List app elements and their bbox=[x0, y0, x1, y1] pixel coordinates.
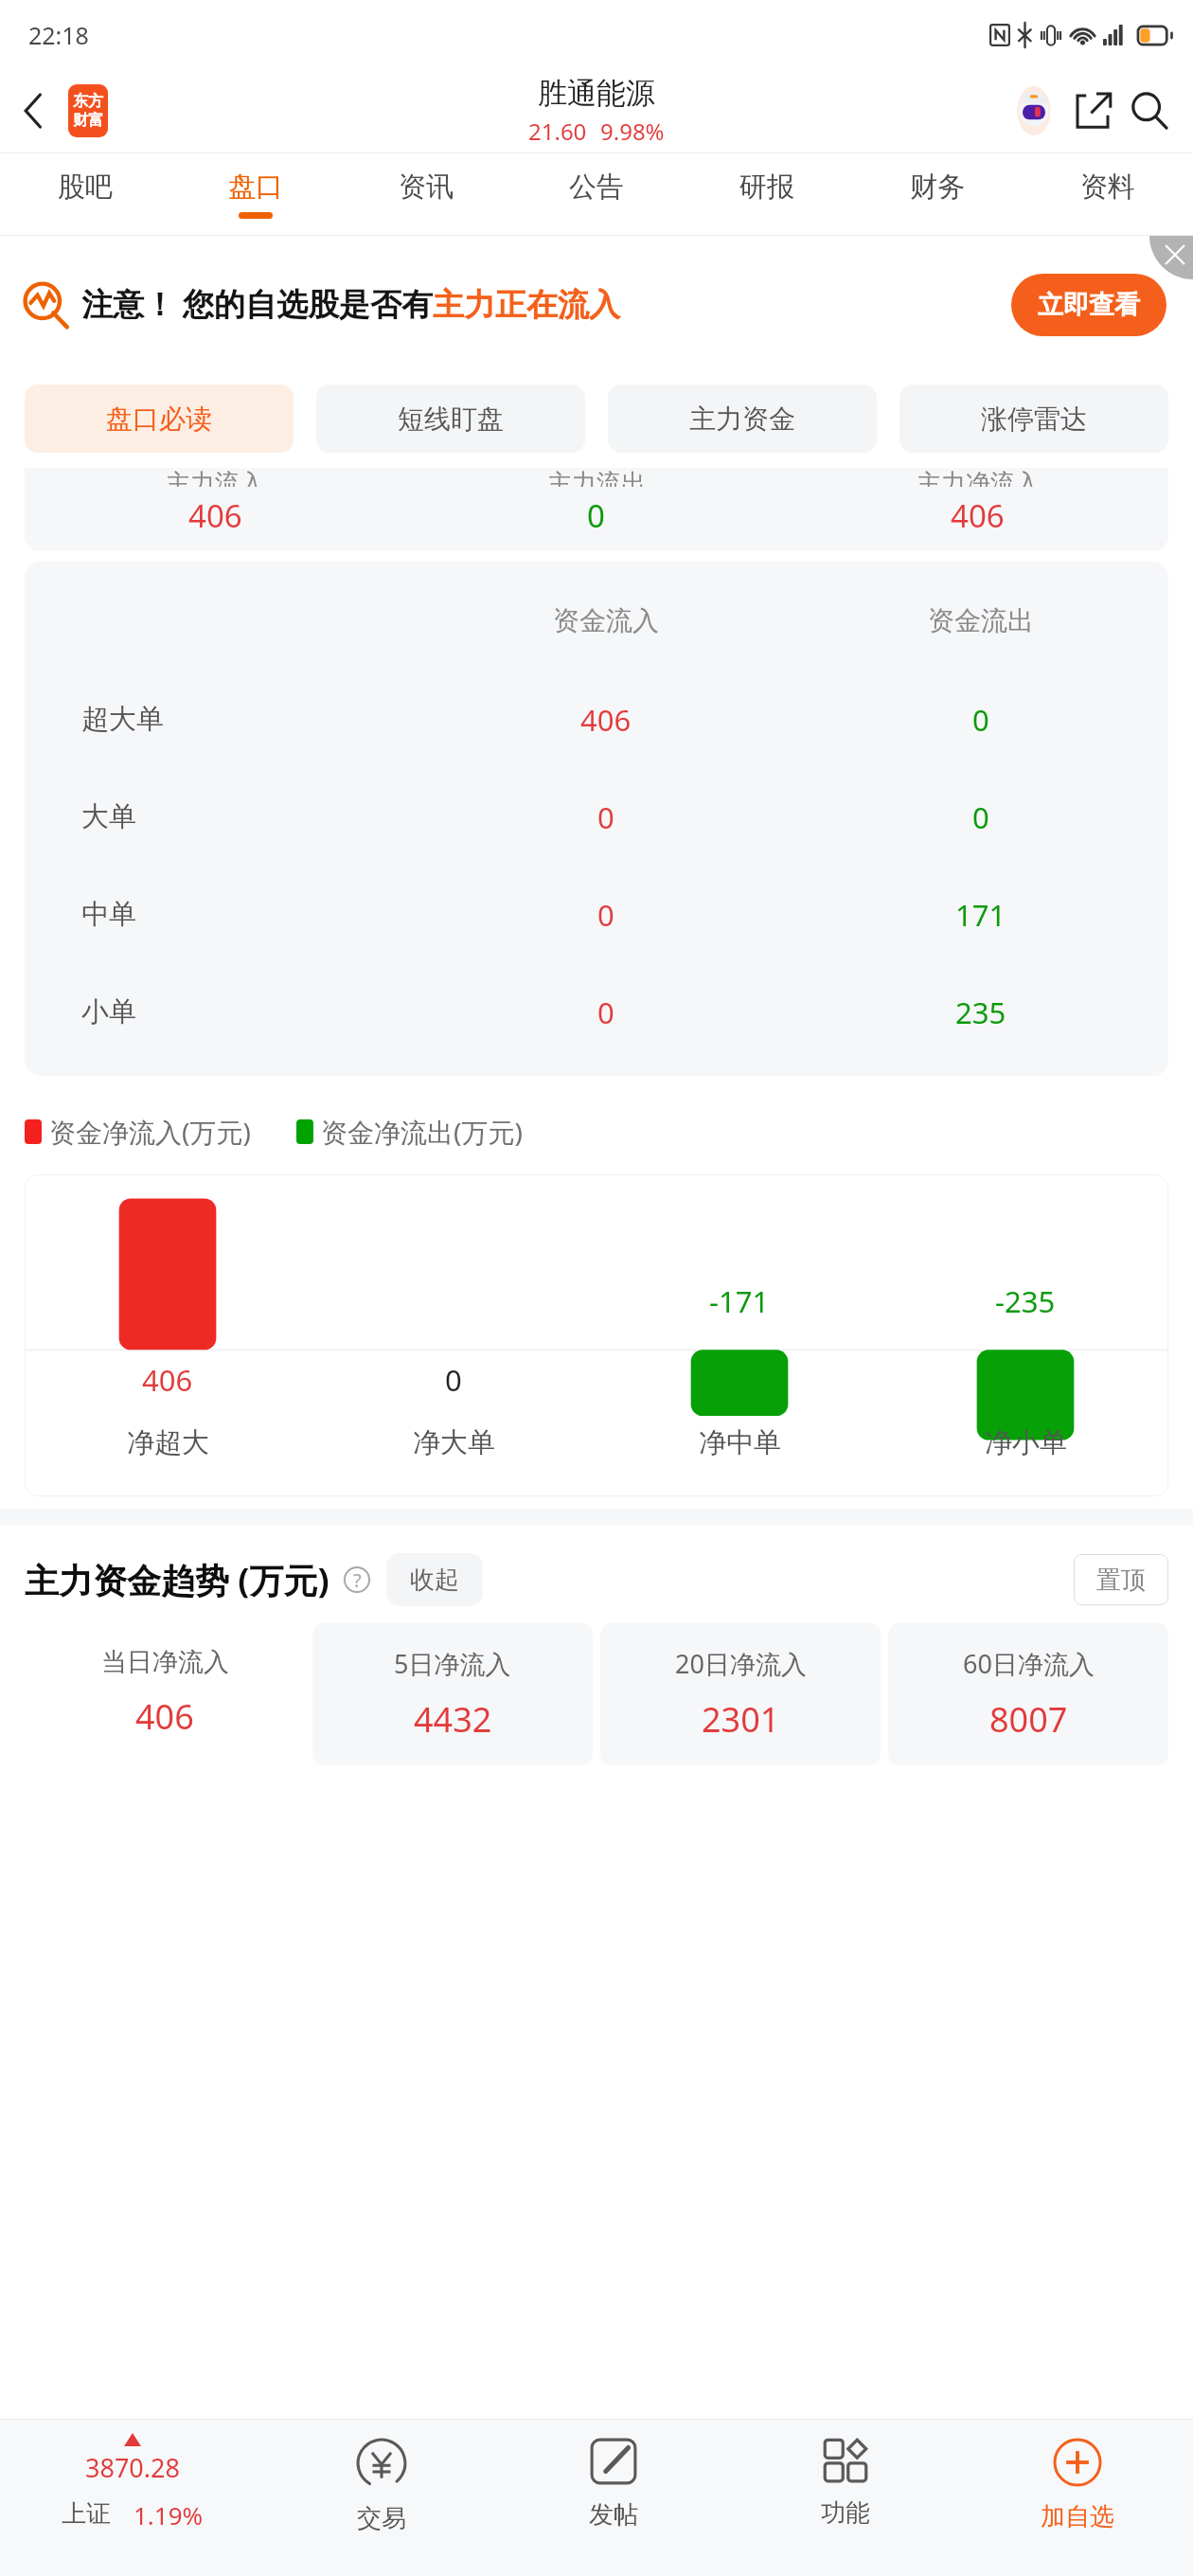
staticText: 您的自选股是否有 bbox=[183, 285, 433, 325]
staticText: 主力资金 bbox=[689, 402, 795, 436]
button[interactable]: Help bbox=[341, 1564, 373, 1596]
button[interactable]: 注意！ bbox=[23, 236, 1166, 373]
staticText: 5日净流入 bbox=[394, 1646, 511, 1681]
button[interactable]: Back bbox=[8, 84, 61, 137]
button[interactable]: 加自选 bbox=[961, 2420, 1193, 2576]
button[interactable]: -171 bbox=[25, 1174, 1168, 1496]
staticText: 注意！ bbox=[81, 285, 175, 325]
button[interactable]: 主力流入 bbox=[25, 468, 1168, 551]
staticText: 超大单 bbox=[81, 702, 164, 737]
staticText: 上证 bbox=[62, 2498, 111, 2530]
staticText: 9.98% bbox=[600, 116, 665, 147]
button[interactable]: 股吧 bbox=[0, 153, 170, 235]
button[interactable]: 发帖 bbox=[497, 2420, 729, 2576]
staticText: 当日净流入 bbox=[101, 1646, 229, 1678]
staticText: 406 bbox=[951, 494, 1005, 537]
staticText: 盘口 bbox=[228, 170, 283, 205]
staticText: 0 bbox=[972, 700, 989, 740]
button[interactable]: 60日净流入 bbox=[888, 1623, 1168, 1765]
staticText: 4432 bbox=[414, 1696, 492, 1743]
staticText: 功能 bbox=[821, 2497, 870, 2529]
button[interactable]: 短线盯盘 bbox=[316, 385, 585, 453]
staticText: 资讯 bbox=[399, 170, 454, 205]
button[interactable]: 研报 bbox=[682, 153, 852, 235]
staticText: 中单 bbox=[81, 897, 136, 932]
staticText: 0 bbox=[445, 1360, 462, 1400]
button[interactable]: 东方财富 bbox=[68, 84, 108, 137]
staticText: 406 bbox=[580, 700, 632, 740]
button[interactable]: 立即查看 bbox=[1011, 274, 1166, 336]
staticText: 研报 bbox=[739, 170, 794, 205]
staticText: 主力正在流入 bbox=[433, 285, 620, 325]
staticText: 发帖 bbox=[589, 2499, 638, 2531]
staticText: 财务 bbox=[910, 170, 965, 205]
staticText: 盘口必读 bbox=[106, 402, 212, 436]
staticText: -171 bbox=[709, 1281, 770, 1321]
button[interactable]: 公告 bbox=[511, 153, 682, 235]
staticText: 净超大 bbox=[127, 1425, 209, 1460]
staticText: 0 bbox=[597, 993, 614, 1032]
button[interactable]: 20日净流入 bbox=[600, 1623, 881, 1765]
staticText: 主力流出 bbox=[547, 468, 646, 487]
staticText: 股吧 bbox=[58, 170, 113, 205]
staticText: 3870.28 bbox=[85, 2450, 180, 2485]
button[interactable]: 交易 bbox=[265, 2420, 497, 2576]
button[interactable]: 资金流入 bbox=[25, 562, 1168, 1076]
button[interactable]: 3870.28 bbox=[0, 2420, 265, 2576]
staticText: 短线盯盘 bbox=[398, 402, 504, 436]
button[interactable]: 5日净流入 bbox=[312, 1623, 593, 1765]
staticText: 0 bbox=[972, 797, 989, 837]
staticText: 收起 bbox=[410, 1565, 459, 1596]
staticText: -235 bbox=[995, 1281, 1056, 1321]
button[interactable]: 资料 bbox=[1023, 153, 1193, 235]
button[interactable]: 涨停雷达 bbox=[899, 385, 1168, 453]
staticText: 立即查看 bbox=[1038, 289, 1140, 321]
button[interactable]: 财务 bbox=[852, 153, 1023, 235]
staticText: 60日净流入 bbox=[963, 1646, 1095, 1681]
staticText: 22:18 bbox=[28, 19, 89, 51]
staticText: 胜通能源 bbox=[538, 75, 655, 112]
staticText: 公告 bbox=[569, 170, 624, 205]
staticText: 主力流入 bbox=[166, 468, 264, 487]
staticText: 主力资金趋势 (万元) bbox=[25, 1557, 329, 1603]
staticText: 主力净流入 bbox=[917, 468, 1040, 487]
staticText: 0 bbox=[587, 494, 605, 537]
staticText: 406 bbox=[188, 494, 242, 537]
staticText: 1.19% bbox=[134, 2498, 204, 2531]
button[interactable]: Share bbox=[1064, 82, 1121, 139]
button[interactable]: 置顶 bbox=[1074, 1554, 1168, 1605]
staticText: 小单 bbox=[81, 994, 136, 1029]
staticText: 235 bbox=[955, 993, 1006, 1032]
staticText: 406 bbox=[142, 1360, 193, 1400]
staticText: 净中单 bbox=[699, 1425, 781, 1460]
button[interactable]: Search bbox=[1121, 82, 1178, 139]
staticText: 大单 bbox=[81, 799, 136, 834]
staticText: 财富 bbox=[73, 111, 103, 130]
staticText: 20日净流入 bbox=[675, 1646, 807, 1681]
staticText: 资金净流入(万元) bbox=[49, 1114, 251, 1150]
button[interactable]: 收起 bbox=[386, 1553, 483, 1606]
staticText: 净小单 bbox=[985, 1425, 1067, 1460]
staticText: 171 bbox=[955, 895, 1006, 935]
button[interactable]: Close ad bbox=[1149, 236, 1193, 279]
button[interactable]: 主力资金 bbox=[608, 385, 877, 453]
button[interactable]: 资讯 bbox=[341, 153, 511, 235]
staticText: 406 bbox=[135, 1693, 194, 1740]
staticText: 资料 bbox=[1080, 170, 1135, 205]
staticText: 资金流出 bbox=[928, 604, 1034, 637]
button[interactable]: 功能 bbox=[729, 2420, 961, 2576]
staticText: 21.60 bbox=[528, 116, 587, 147]
button[interactable]: 盘口 bbox=[170, 153, 341, 235]
staticText: 资金净流出(万元) bbox=[321, 1114, 523, 1150]
staticText: 净大单 bbox=[413, 1425, 495, 1460]
staticText: 置顶 bbox=[1096, 1565, 1146, 1596]
staticText: 交易 bbox=[357, 2503, 406, 2534]
staticText: 8007 bbox=[989, 1696, 1068, 1743]
button[interactable]: 当日净流入 bbox=[25, 1623, 305, 1765]
staticText: 涨停雷达 bbox=[981, 402, 1087, 436]
staticText: 资金流入 bbox=[553, 604, 659, 637]
staticText: ? bbox=[353, 1567, 362, 1593]
staticText: 加自选 bbox=[1041, 2501, 1114, 2532]
button[interactable]: Assistant bbox=[1004, 80, 1064, 141]
button[interactable]: 盘口必读 bbox=[25, 385, 294, 453]
